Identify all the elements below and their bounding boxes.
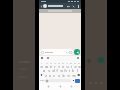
button[interactable]: k <box>71 68 75 72</box>
button[interactable]: Period <box>72 78 75 83</box>
button[interactable]: 6 <box>61 60 65 64</box>
button[interactable]: Call <box>72 5 75 8</box>
staticText: l <box>77 68 78 72</box>
staticText: f <box>56 68 58 72</box>
button[interactable]: 7 <box>65 60 69 64</box>
staticText: d <box>52 68 55 72</box>
button[interactable]: Next screenshot <box>85 0 107 90</box>
staticText: t <box>58 64 60 68</box>
button[interactable]: Home <box>59 85 62 88</box>
button[interactable]: 0 <box>77 60 81 64</box>
button[interactable] <box>40 49 73 55</box>
button[interactable]: 9 <box>73 60 77 64</box>
button[interactable]: 4 <box>53 60 57 64</box>
staticText: a <box>43 68 45 72</box>
button[interactable]: Back <box>40 5 43 8</box>
staticText: j <box>69 68 70 72</box>
button[interactable]: t <box>57 64 61 68</box>
staticText: 7 <box>66 61 68 64</box>
button[interactable]: c <box>52 73 56 77</box>
button[interactable]: Shift <box>39 73 44 77</box>
staticText: y <box>62 64 64 68</box>
button[interactable]: p <box>77 64 81 68</box>
button[interactable]: n <box>66 73 71 77</box>
button[interactable]: v <box>56 73 61 77</box>
button[interactable]: s <box>46 68 51 72</box>
staticText: g <box>60 68 63 72</box>
staticText: 6 <box>62 61 64 64</box>
staticText: c <box>53 73 55 77</box>
button[interactable]: z <box>44 73 48 77</box>
button[interactable]: g <box>59 68 63 72</box>
button[interactable]: i <box>69 64 73 68</box>
staticText: b <box>62 73 65 77</box>
button[interactable]: d <box>51 68 55 72</box>
staticText: r <box>54 64 56 68</box>
button[interactable]: Backspace <box>76 73 81 77</box>
button[interactable]: Symbols <box>40 78 45 83</box>
staticText: w <box>45 64 48 68</box>
button[interactable]: 2 <box>44 60 49 64</box>
staticText: x <box>49 73 51 77</box>
staticText: 4 <box>54 61 56 64</box>
button[interactable]: q <box>39 64 44 68</box>
button[interactable]: Video call <box>67 5 70 8</box>
button[interactable]: 5 <box>57 60 61 64</box>
button[interactable]: l <box>75 68 79 72</box>
staticText: 8 <box>70 61 72 64</box>
button[interactable]: o <box>73 64 77 68</box>
button[interactable]: 8 <box>69 60 73 64</box>
button[interactable]: 3 <box>49 60 53 64</box>
button[interactable]: f <box>55 68 59 72</box>
button[interactable]: u <box>65 64 69 68</box>
staticText: n <box>67 73 70 77</box>
button[interactable]: 1 <box>39 60 44 64</box>
staticText: z <box>45 73 47 77</box>
staticText: 1 <box>41 61 43 64</box>
button[interactable]: Enter <box>75 79 80 83</box>
staticText: 0 <box>78 61 80 64</box>
staticText: s <box>48 68 50 72</box>
button[interactable]: b <box>61 73 66 77</box>
staticText: u <box>66 64 69 68</box>
button[interactable]: m <box>71 73 76 77</box>
staticText: k <box>72 68 74 72</box>
staticText: q <box>40 64 43 68</box>
button[interactable]: a <box>41 68 46 72</box>
button[interactable]: e <box>49 64 53 68</box>
button[interactable]: r <box>53 64 57 68</box>
button[interactable]: Recents <box>70 85 73 88</box>
button[interactable]: Send <box>74 49 80 55</box>
button[interactable]: h <box>63 68 67 72</box>
button[interactable]: Back <box>39 3 81 9</box>
staticText: 2 <box>46 61 48 64</box>
staticText: m <box>72 73 76 77</box>
staticText: ?123 <box>40 79 45 82</box>
button[interactable]: Emoji <box>45 78 48 83</box>
staticText: e <box>50 64 52 68</box>
staticText: o <box>74 64 77 68</box>
button[interactable]: y <box>61 64 65 68</box>
button[interactable]: w <box>44 64 49 68</box>
button[interactable]: Back <box>47 85 50 88</box>
staticText: 5 <box>58 61 60 64</box>
staticText: 9 <box>74 61 76 64</box>
staticText: p <box>78 64 81 68</box>
staticText: h <box>64 68 67 72</box>
staticText: v <box>58 73 60 77</box>
staticText: i <box>71 64 72 68</box>
button[interactable]: j <box>67 68 71 72</box>
staticText: 3 <box>50 61 52 64</box>
button[interactable]: More options <box>77 5 79 8</box>
button[interactable]: x <box>48 73 52 77</box>
